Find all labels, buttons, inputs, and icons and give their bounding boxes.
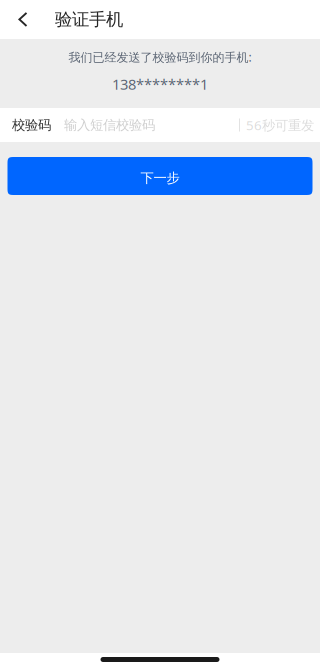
staticText: 输入短信校验码 bbox=[64, 117, 155, 133]
button[interactable]: 输入短信校验码 bbox=[51, 108, 155, 142]
staticText: 我们已经发送了校验码到你的手机: bbox=[68, 49, 251, 65]
staticText: 下一步 bbox=[140, 170, 179, 186]
button[interactable]: 返回 bbox=[0, 0, 37, 39]
staticText: 校验码 bbox=[12, 117, 51, 133]
staticText: 138********1 bbox=[112, 74, 208, 94]
staticText: 验证手机 bbox=[55, 9, 123, 30]
button[interactable]: 56秒可重发 bbox=[239, 108, 320, 142]
button[interactable]: 下一步 bbox=[7, 157, 312, 195]
staticText: 56秒可重发 bbox=[246, 116, 314, 134]
